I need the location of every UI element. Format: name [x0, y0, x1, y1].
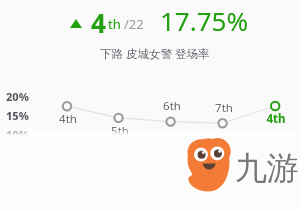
staticText: 4th: [59, 111, 77, 127]
staticText: 20%: [6, 89, 29, 104]
staticText: 4th: [266, 111, 286, 127]
staticText: 7th: [215, 100, 233, 116]
staticText: 17.75%: [160, 3, 249, 38]
staticText: 6th: [163, 98, 181, 114]
staticText: 九游: [235, 148, 299, 188]
staticText: 15%: [6, 108, 29, 123]
staticText: 10%: [6, 127, 29, 142]
staticText: 4: [91, 5, 106, 40]
staticText: th: [108, 15, 121, 33]
staticText: /22: [124, 15, 144, 33]
staticText: 5th: [111, 123, 129, 139]
staticText: 下路 皮城女警 登场率: [100, 46, 210, 62]
